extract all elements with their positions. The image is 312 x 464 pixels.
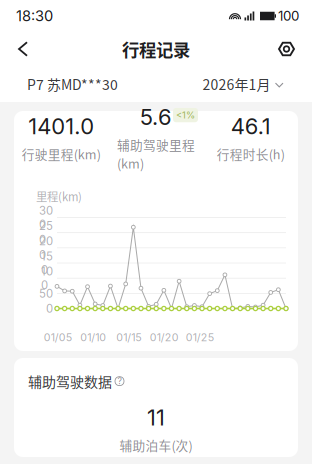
staticText: 01/25 [186, 331, 214, 344]
staticText: 18:30 [16, 7, 53, 25]
staticText: <1% [176, 109, 195, 121]
staticText: 辅助驾驶里程(km) [117, 135, 195, 172]
staticText: 150 [41, 249, 53, 277]
staticText: 01/15 [116, 331, 141, 344]
staticText: 2026年1月 [202, 74, 270, 94]
button[interactable]: Settings [267, 33, 312, 65]
staticText: 5.6 [140, 104, 172, 130]
button[interactable]: Back [0, 33, 39, 65]
staticText: 250 [39, 219, 53, 246]
staticText: 100 [278, 8, 299, 24]
staticText: P7 苏MD***30 [27, 74, 118, 94]
staticText: 行驶里程(km) [22, 145, 101, 163]
staticText: 46.1 [231, 113, 271, 140]
staticText: 100 [41, 265, 53, 292]
staticText: 里程(km) [36, 188, 82, 204]
staticText: 0 [46, 302, 53, 316]
staticText: 200 [39, 234, 53, 262]
staticText: 辅助泊车(次) [119, 436, 192, 454]
staticText: 01/10 [80, 331, 106, 344]
staticText: 300 [39, 204, 53, 231]
staticText: 50 [39, 287, 53, 300]
staticText: 11 [147, 404, 165, 431]
button[interactable]: 2026年1月 [202, 67, 283, 101]
staticText: 1401.0 [28, 113, 94, 140]
staticText: 行驶里程 [88, 356, 136, 373]
staticText: 01/20 [150, 331, 179, 344]
staticText: ? [117, 376, 121, 386]
staticText: 行程记录 [122, 36, 190, 62]
staticText: 01/05 [44, 331, 72, 344]
staticText: 辅助驾驶数据 [28, 371, 112, 391]
staticText: 行程时长(h) [217, 145, 285, 163]
staticText: 辅助驾驶里程 [163, 356, 235, 373]
